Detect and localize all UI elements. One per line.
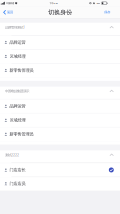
button[interactable]: 中国电信集团演示: [0, 87, 120, 99]
staticText: 新零售管理员: [10, 131, 34, 137]
staticText: 品牌运营: [10, 103, 26, 109]
staticText: 区域经理: [10, 117, 26, 123]
staticText: 门店店员: [10, 181, 26, 186]
staticText: 下午5:20: [49, 2, 57, 5]
button[interactable]: 门店店长: [0, 163, 120, 177]
button[interactable]: 区域经理: [0, 50, 120, 64]
staticText: 中国电信集团演示: [5, 89, 29, 93]
staticText: 品牌运营: [10, 40, 26, 45]
staticText: 测试2222: [5, 152, 19, 157]
staticText: 25%: [96, 2, 100, 5]
button[interactable]: 保存: [101, 6, 120, 18]
staticText: 切换身份: [48, 8, 72, 16]
staticText: 区域经理: [10, 54, 26, 59]
staticText: 品牌管理测试1: [5, 25, 25, 30]
staticText: 返回: [7, 10, 13, 14]
button[interactable]: 返回: [0, 6, 16, 18]
staticText: 保存: [104, 10, 110, 14]
button[interactable]: 测试2222: [0, 150, 120, 163]
button[interactable]: 品牌运营: [0, 36, 120, 50]
button[interactable]: 区域经理: [0, 113, 120, 127]
button[interactable]: 品牌运营: [0, 99, 120, 113]
button[interactable]: 新零售管理员: [0, 64, 120, 78]
button[interactable]: 品牌管理测试1: [0, 23, 120, 35]
staticText: 门店店长: [10, 167, 26, 172]
staticText: 中国联通: [6, 2, 14, 5]
staticText: 新零售管理员: [10, 68, 34, 73]
button[interactable]: 门店店员: [0, 177, 120, 190]
button[interactable]: 新零售管理员: [0, 127, 120, 141]
